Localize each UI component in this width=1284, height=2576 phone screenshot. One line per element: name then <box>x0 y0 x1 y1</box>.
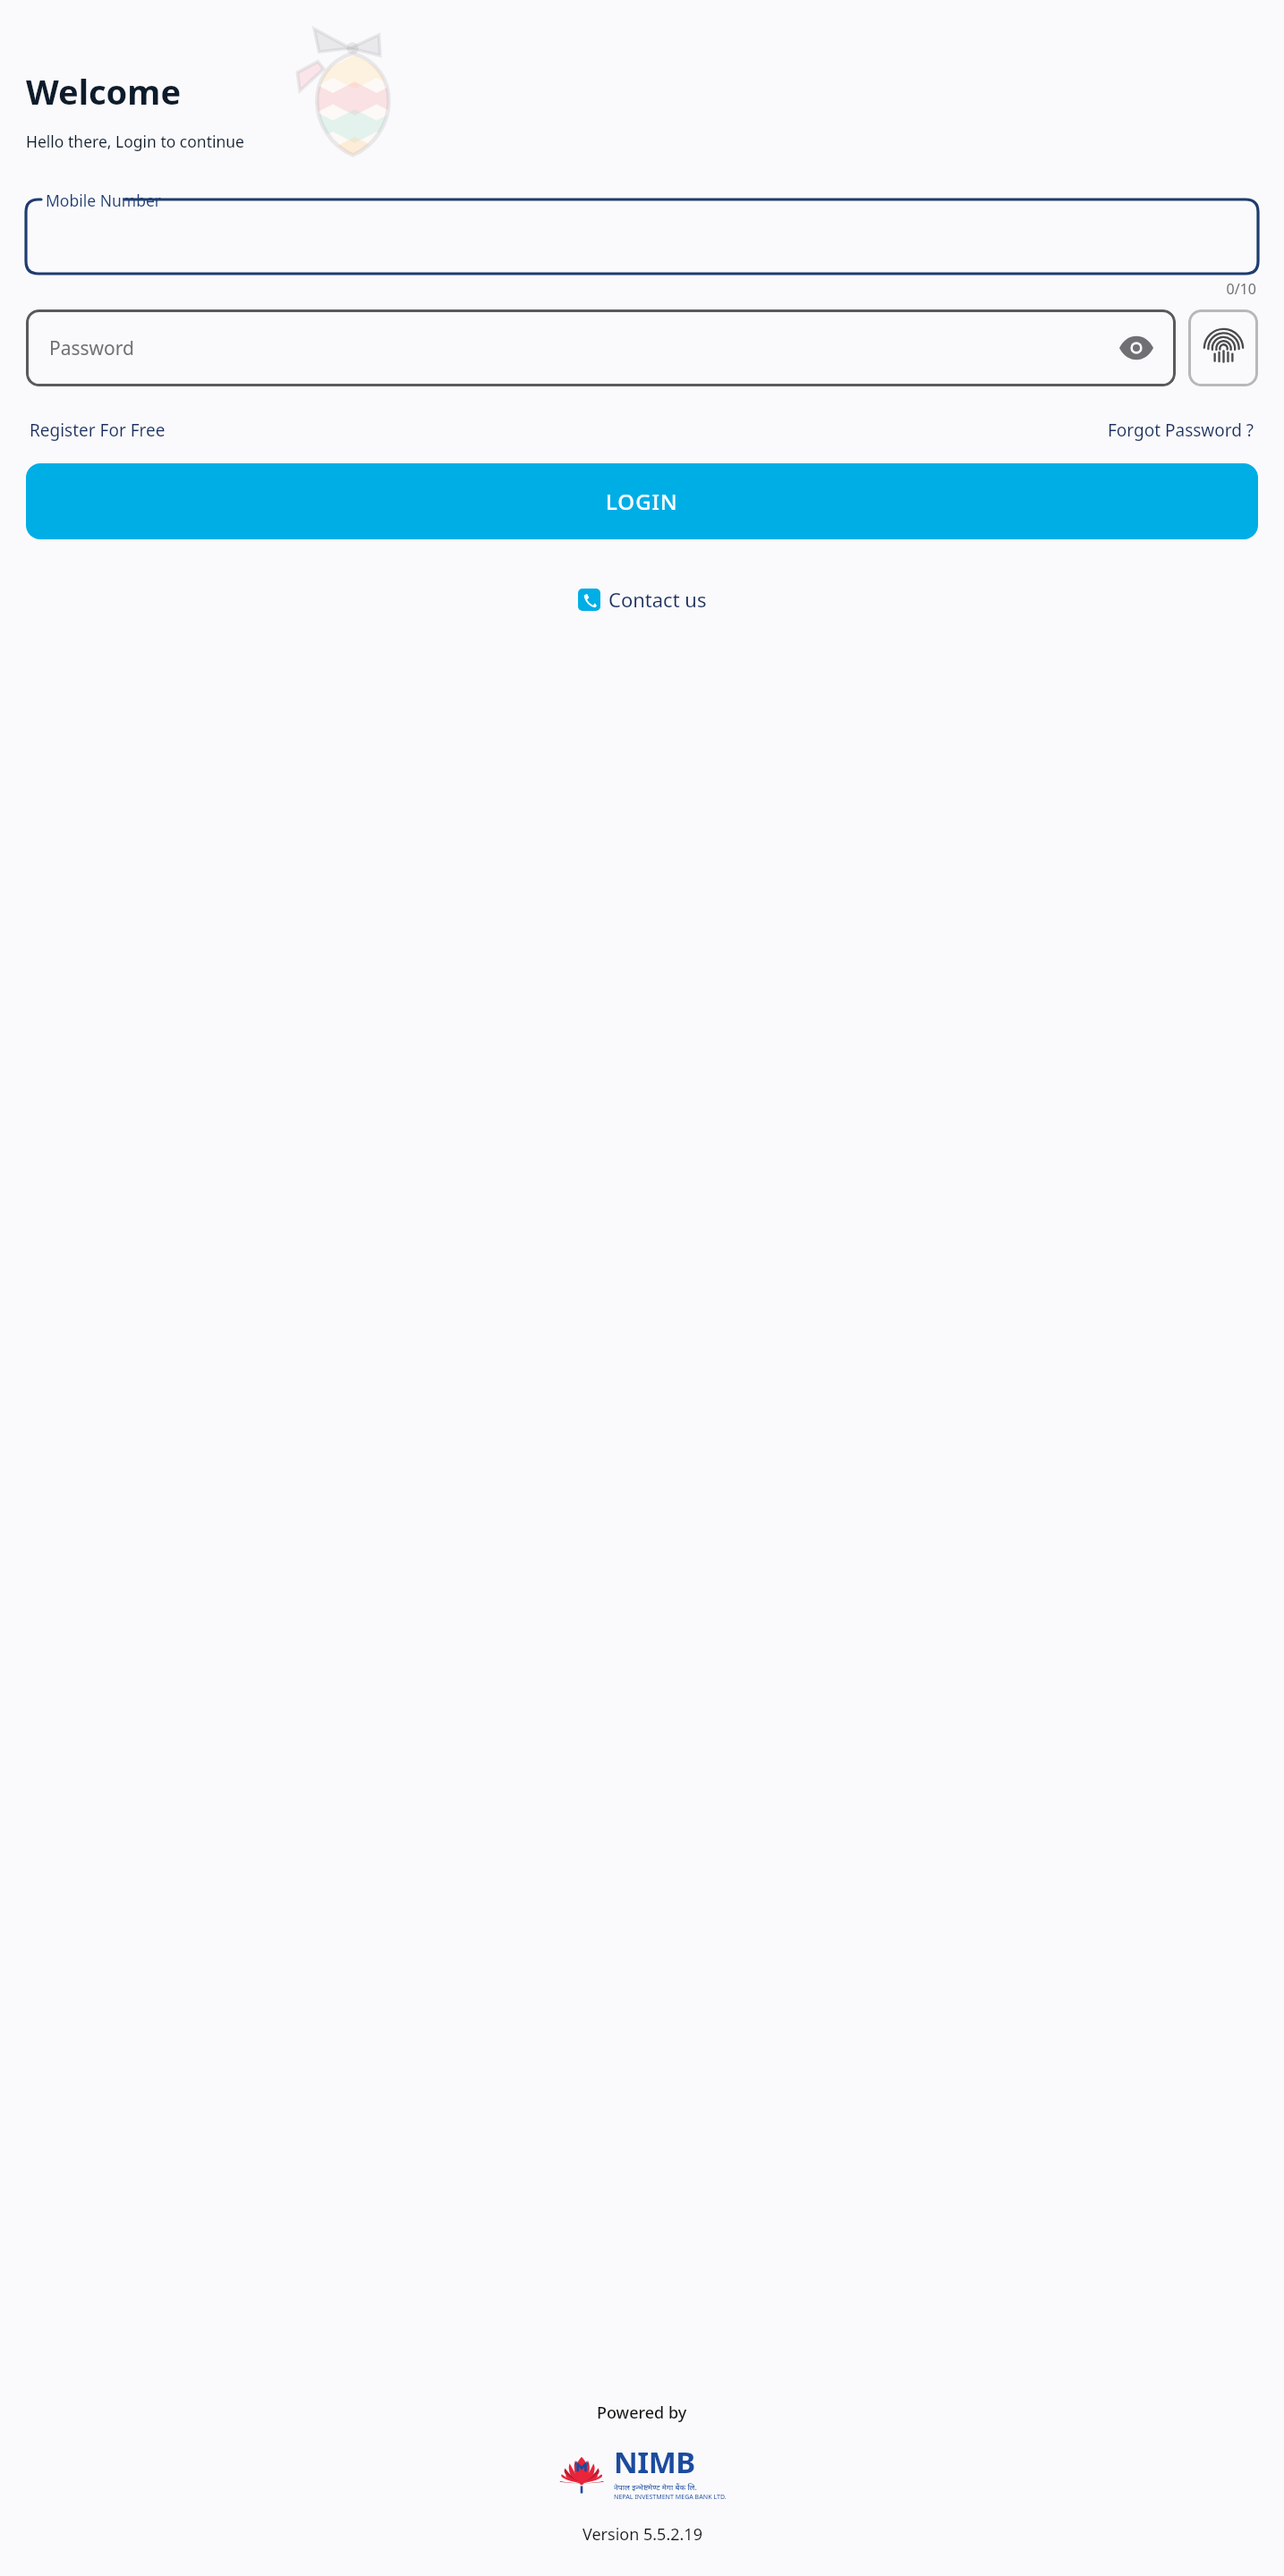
staticText: Password <box>49 335 134 361</box>
staticText: नेपाल इन्भेष्टमेण्ट मेगा बैंक लि. <box>614 2482 697 2493</box>
staticText: Welcome <box>26 68 182 114</box>
button[interactable]: Password <box>26 309 1176 386</box>
staticText: Hello there, Login to continue <box>26 131 244 152</box>
staticText: Powered by <box>597 2402 687 2424</box>
button[interactable]: Register For Free <box>30 419 166 442</box>
button[interactable]: Contact us <box>578 586 707 613</box>
staticText: NEPAL INVESTMENT MEGA BANK LTD. <box>614 2493 727 2502</box>
staticText: LOGIN <box>606 487 678 516</box>
staticText: Version 5.5.2.19 <box>582 2523 702 2546</box>
button[interactable]: LOGIN <box>26 463 1258 539</box>
button[interactable]: Login with fingerprint <box>1188 309 1258 386</box>
button[interactable]: Show password <box>1115 326 1158 369</box>
button[interactable]: Forgot Password ? <box>1108 419 1254 442</box>
staticText: Register For Free <box>30 419 166 442</box>
staticText: Forgot Password ? <box>1108 419 1254 442</box>
staticText: NIMB <box>614 2442 695 2482</box>
staticText: 0/10 <box>0 279 1256 299</box>
staticText: Contact us <box>608 586 707 613</box>
staticText: Mobile Number <box>46 190 162 211</box>
button[interactable]: Mobile Number <box>26 190 1258 274</box>
